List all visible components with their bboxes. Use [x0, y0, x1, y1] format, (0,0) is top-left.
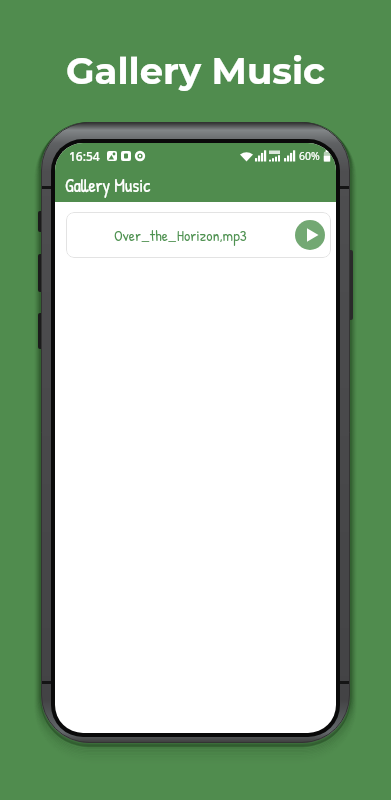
button[interactable]: [295, 220, 325, 250]
button[interactable]: Over_the_Horizon,mp3: [66, 212, 331, 258]
staticText: Over_the_Horizon,mp3: [114, 225, 247, 246]
staticText: Gallery Music: [0, 48, 391, 93]
staticText: 16:54: [69, 148, 100, 164]
staticText: 60%: [299, 149, 320, 163]
staticText: Gallery Music: [65, 173, 151, 197]
